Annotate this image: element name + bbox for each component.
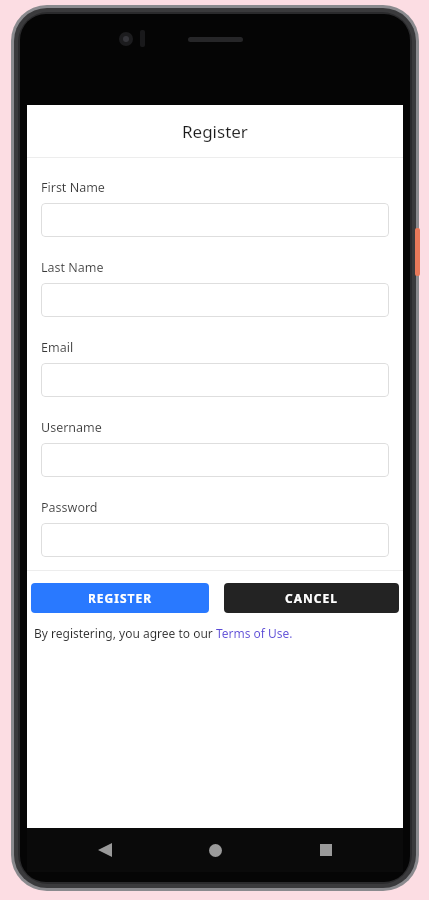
button[interactable]: Recent apps xyxy=(310,834,342,866)
staticText: REGISTER xyxy=(88,590,153,606)
button[interactable] xyxy=(41,443,389,477)
button[interactable] xyxy=(41,363,389,397)
staticText: Email xyxy=(41,339,74,356)
button[interactable] xyxy=(41,283,389,317)
staticText: Password xyxy=(41,499,98,516)
button[interactable]: Home xyxy=(199,834,231,866)
button[interactable] xyxy=(41,523,389,557)
staticText: Register xyxy=(182,120,248,143)
staticText: First Name xyxy=(41,179,105,196)
button[interactable]: By registering, you agree to our Terms o… xyxy=(34,625,293,641)
button[interactable]: REGISTER xyxy=(31,583,209,613)
button[interactable]: Back xyxy=(89,834,121,866)
staticText: Last Name xyxy=(41,259,104,276)
staticText: Username xyxy=(41,419,102,436)
button[interactable]: CANCEL xyxy=(224,583,399,613)
button[interactable] xyxy=(41,203,389,237)
staticText: CANCEL xyxy=(285,590,338,606)
